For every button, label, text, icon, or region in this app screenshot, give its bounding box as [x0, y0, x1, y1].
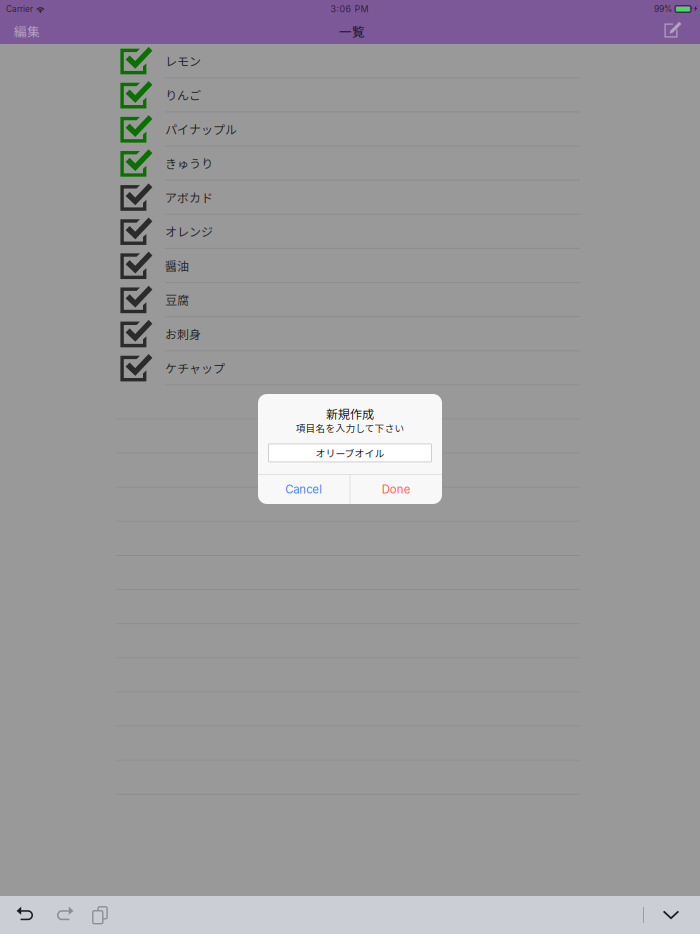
staticText: Cancel — [285, 483, 322, 496]
button[interactable]: 編集 — [0, 18, 40, 44]
staticText: Carrier — [6, 4, 33, 14]
staticText: オリーブオイル — [315, 446, 384, 460]
button[interactable]: Redo — [39, 903, 75, 927]
staticText: オレンジ — [165, 223, 213, 240]
staticText: 豆腐 — [165, 291, 189, 308]
button[interactable]: ケチャップ — [116, 351, 580, 385]
staticText: 項目名を入力して下さい — [295, 421, 404, 435]
button[interactable]: お刺身 — [116, 317, 580, 351]
staticText: 醤油 — [165, 257, 189, 274]
staticText: 一覧 — [339, 22, 365, 40]
button[interactable]: パイナップル — [116, 112, 580, 146]
button[interactable]: きゅうり — [116, 146, 580, 181]
staticText: 新規作成 — [326, 405, 374, 422]
staticText: 99% — [654, 4, 672, 14]
staticText: きゅうり — [165, 154, 213, 172]
staticText: アボカド — [165, 188, 213, 206]
staticText: パイナップル — [165, 120, 237, 138]
staticText: お刺身 — [165, 325, 201, 342]
staticText: ケチャップ — [165, 359, 225, 376]
staticText: 3:06 PM — [330, 4, 368, 14]
button[interactable]: 豆腐 — [116, 283, 580, 317]
button[interactable]: りんご — [116, 78, 580, 112]
button[interactable]: New item — [664, 20, 700, 42]
button[interactable]: レモン — [116, 44, 580, 78]
button[interactable]: Cancel — [258, 475, 350, 504]
button[interactable]: Undo — [0, 903, 39, 927]
staticText: レモン — [165, 52, 201, 69]
staticText: りんご — [165, 86, 201, 104]
button[interactable]: Hide keyboard — [644, 903, 700, 927]
button[interactable]: 醤油 — [116, 249, 580, 283]
button[interactable]: Paste — [75, 903, 112, 927]
button[interactable]: オレンジ — [116, 215, 580, 249]
button[interactable]: Done — [350, 475, 442, 504]
staticText: Done — [382, 483, 411, 496]
staticText: 編集 — [14, 22, 40, 40]
button[interactable]: アボカド — [116, 181, 580, 215]
